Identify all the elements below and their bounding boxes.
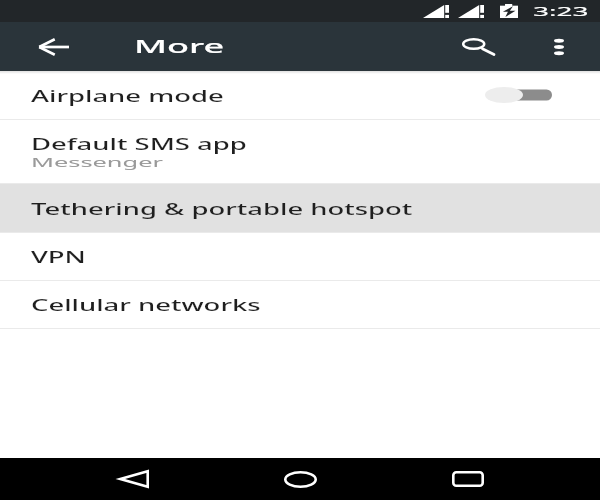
staticText: Tethering & portable hotspot (31, 198, 413, 219)
staticText: 3:23 (533, 3, 589, 19)
button[interactable]: Back (22, 22, 84, 71)
staticText: Cellular networks (31, 294, 261, 315)
staticText: Airplane mode (31, 85, 224, 106)
button[interactable]: Recent apps (428, 458, 508, 500)
staticText: More (134, 34, 226, 59)
button[interactable]: Airplane mode (0, 71, 600, 119)
button[interactable]: Default SMS app (0, 120, 600, 183)
button[interactable]: More options (529, 22, 589, 71)
button[interactable]: Home (260, 458, 340, 500)
button[interactable]: Cellular networks (0, 281, 600, 328)
button[interactable]: Tethering & portable hotspot (0, 184, 600, 232)
staticText: Default SMS app (31, 133, 247, 154)
button[interactable]: VPN (0, 233, 600, 280)
staticText: Messenger (31, 153, 164, 171)
button[interactable]: Search (448, 22, 508, 71)
staticText: VPN (31, 246, 88, 267)
button[interactable]: Back (94, 458, 174, 500)
